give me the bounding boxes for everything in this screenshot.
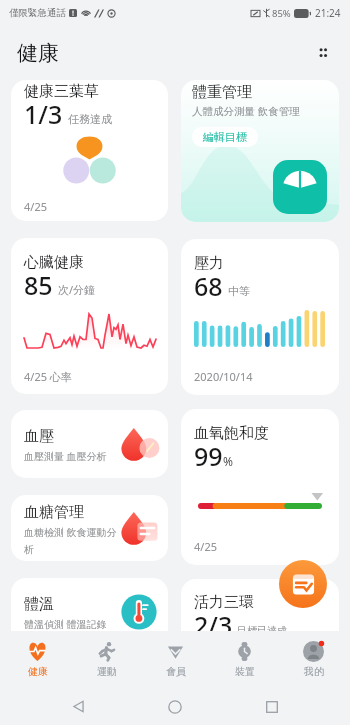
- staticText: 4/25: [24, 199, 47, 214]
- staticText: 4/25 心率: [24, 369, 72, 384]
- staticText: 體溫: [24, 595, 54, 614]
- button[interactable]: 健康: [5, 631, 69, 688]
- staticText: 血糖檢測 飲食運動分析: [24, 525, 122, 556]
- staticText: 健康三葉草: [24, 82, 99, 101]
- staticText: 次/分鐘: [58, 282, 96, 297]
- button[interactable]: 活力三環: [181, 579, 339, 647]
- staticText: 血壓測量 血壓分析: [24, 449, 107, 463]
- staticText: 會員: [166, 665, 186, 678]
- staticText: 壓力: [194, 254, 224, 273]
- button[interactable]: Home: [156, 688, 194, 725]
- staticText: 運動: [97, 665, 117, 678]
- staticText: 健康: [17, 40, 59, 66]
- staticText: 85: [24, 268, 53, 302]
- staticText: 21:24: [315, 6, 341, 20]
- staticText: 2020/10/14: [194, 369, 253, 384]
- button[interactable]: 血糖管理: [11, 495, 168, 561]
- button[interactable]: More options: [308, 38, 338, 68]
- staticText: 目標已達成: [237, 624, 287, 637]
- button[interactable]: 會員: [143, 631, 207, 688]
- staticText: 85%: [272, 7, 291, 20]
- staticText: 血糖管理: [24, 503, 84, 522]
- button[interactable]: Add record: [279, 560, 327, 608]
- button[interactable]: 裝置: [212, 631, 276, 688]
- button[interactable]: 運動: [74, 631, 138, 688]
- button[interactable]: 編輯目標: [192, 127, 258, 147]
- staticText: 68: [194, 269, 223, 303]
- button[interactable]: 血氧飽和度: [181, 409, 339, 565]
- staticText: %: [223, 453, 233, 469]
- button[interactable]: 我的: [281, 631, 345, 688]
- staticText: 2/3: [194, 608, 233, 642]
- staticText: 1/3: [24, 97, 63, 131]
- staticText: 血壓: [24, 427, 54, 446]
- staticText: 99: [194, 439, 223, 473]
- button[interactable]: 體溫: [11, 578, 168, 646]
- button[interactable]: 心臟健康: [11, 238, 168, 394]
- staticText: 心臟健康: [24, 253, 84, 272]
- button[interactable]: 體重管理: [181, 80, 339, 222]
- staticText: 僅限緊急通話: [9, 7, 66, 19]
- staticText: 血氧飽和度: [194, 424, 269, 443]
- button[interactable]: Back: [59, 688, 97, 725]
- staticText: 中等: [228, 284, 250, 298]
- button[interactable]: Recents: [253, 688, 291, 725]
- staticText: 體溫偵測 體溫記錄: [24, 617, 107, 631]
- staticText: 4/25: [194, 539, 217, 554]
- button[interactable]: 血壓: [11, 410, 168, 478]
- staticText: 人體成分測量 飲食管理: [192, 104, 300, 118]
- staticText: 我的: [304, 665, 324, 678]
- staticText: 健康: [28, 665, 48, 678]
- staticText: 任務達成: [68, 112, 112, 126]
- staticText: 體重管理: [192, 83, 252, 102]
- button[interactable]: 健康三葉草: [11, 80, 168, 221]
- staticText: 裝置: [235, 665, 255, 678]
- staticText: 活力三環: [194, 593, 254, 612]
- button[interactable]: 壓力: [181, 239, 339, 395]
- staticText: 編輯目標: [203, 130, 247, 144]
